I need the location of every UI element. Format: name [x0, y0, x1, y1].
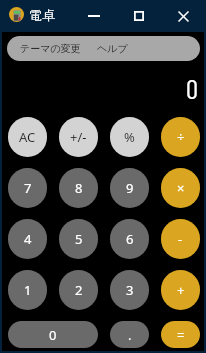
- button[interactable]: AC: [8, 117, 47, 157]
- staticText: 0: [186, 72, 198, 104]
- staticText: +/-: [70, 128, 87, 146]
- staticText: 7: [24, 179, 32, 197]
- staticText: =: [177, 326, 185, 344]
- button[interactable]: 0: [8, 321, 98, 348]
- staticText: 電卓: [29, 7, 55, 23]
- staticText: 4: [24, 230, 32, 248]
- button[interactable]: Maximize: [116, 0, 161, 32]
- button[interactable]: .: [110, 321, 149, 348]
- staticText: 0: [49, 326, 57, 344]
- staticText: .: [128, 326, 132, 344]
- staticText: 9: [126, 179, 134, 197]
- button[interactable]: -: [161, 219, 200, 259]
- staticText: %: [124, 128, 135, 146]
- staticText: +: [177, 281, 185, 299]
- button[interactable]: ヘルプ: [91, 39, 134, 58]
- button[interactable]: =: [161, 321, 200, 348]
- staticText: ×: [177, 179, 185, 197]
- button[interactable]: +/-: [59, 117, 98, 157]
- button[interactable]: 5: [59, 219, 98, 259]
- staticText: 1: [24, 281, 32, 299]
- button[interactable]: 1: [8, 270, 47, 310]
- staticText: テーマの変更: [20, 42, 81, 55]
- button[interactable]: Minimize: [71, 0, 116, 32]
- button[interactable]: 2: [59, 270, 98, 310]
- button[interactable]: テーマの変更: [14, 39, 87, 58]
- staticText: 5: [75, 230, 83, 248]
- button[interactable]: Close: [161, 0, 206, 32]
- button[interactable]: 6: [110, 219, 149, 259]
- button[interactable]: 9: [110, 168, 149, 208]
- staticText: ÷: [177, 128, 185, 146]
- button[interactable]: ÷: [161, 117, 200, 157]
- staticText: AC: [19, 128, 36, 146]
- staticText: 2: [75, 281, 83, 299]
- staticText: 6: [126, 230, 134, 248]
- button[interactable]: %: [110, 117, 149, 157]
- button[interactable]: 7: [8, 168, 47, 208]
- button[interactable]: 4: [8, 219, 47, 259]
- staticText: ヘルプ: [97, 42, 128, 55]
- staticText: -: [178, 230, 183, 248]
- button[interactable]: ×: [161, 168, 200, 208]
- button[interactable]: 8: [59, 168, 98, 208]
- button[interactable]: 3: [110, 270, 149, 310]
- staticText: 3: [126, 281, 134, 299]
- button[interactable]: +: [161, 270, 200, 310]
- staticText: 8: [75, 179, 83, 197]
